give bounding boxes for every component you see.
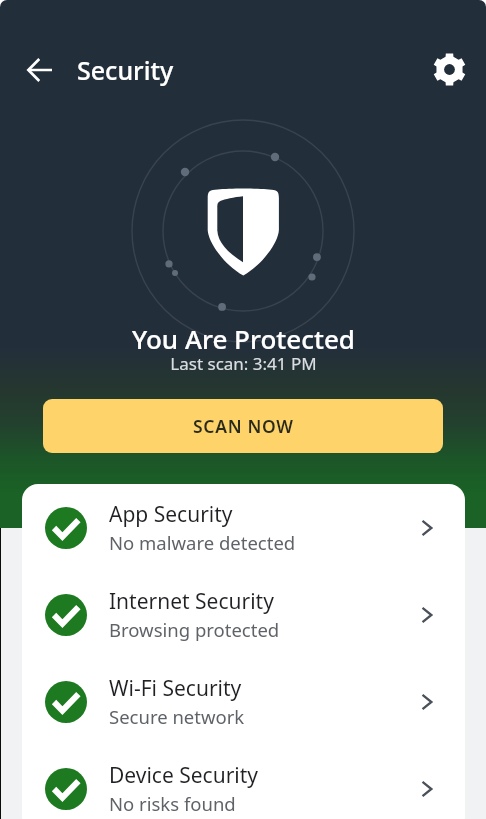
staticText: SCAN NOW [193,414,294,438]
staticText: No risks found [109,791,236,816]
button[interactable]: Settings [427,47,471,91]
staticText: Secure network [109,704,245,729]
button[interactable]: App Security [22,484,465,571]
staticText: Last scan: 3:41 PM [170,352,317,375]
staticText: No malware detected [109,530,296,555]
staticText: Device Security [109,761,259,790]
staticText: Browsing protected [109,617,280,642]
button[interactable]: SCAN NOW [43,399,443,453]
staticText: App Security [109,500,233,529]
button[interactable]: Back [18,48,62,92]
staticText: Wi-Fi Security [109,674,242,703]
button[interactable]: Device Security [22,745,465,819]
staticText: You Are Protected [132,321,355,356]
staticText: Security [77,53,174,87]
button[interactable]: Internet Security [22,571,465,658]
button[interactable]: Wi-Fi Security [22,658,465,745]
staticText: Internet Security [109,587,274,616]
